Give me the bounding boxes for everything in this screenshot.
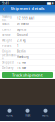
staticText: Hamburg (17, 55, 29, 59)
button[interactable]: Back (1, 5, 6, 12)
staticText: Service (2, 33, 11, 37)
staticText: Express (17, 28, 26, 31)
staticText: Tracking no. (2, 15, 12, 22)
staticText: 2.4 kg (17, 39, 26, 42)
staticText: 1Z 999 AA1 (17, 17, 35, 20)
staticText: Destination (2, 53, 17, 61)
staticText: Home (5, 114, 13, 117)
staticText: Origin (2, 50, 11, 53)
staticText: Carrier (2, 28, 11, 31)
staticText: In transit (17, 22, 29, 26)
staticText: Track (25, 114, 30, 117)
staticText: 12 Mar (17, 61, 26, 64)
staticText: Delivery (2, 66, 13, 70)
button[interactable]: More (36, 105, 54, 121)
staticText: ‹ (2, 4, 4, 13)
staticText: ▆▆ ▮ (47, 1, 53, 4)
staticText: Weight (2, 39, 12, 42)
staticText: Ground (17, 33, 28, 37)
staticText: Shipment details (10, 6, 44, 11)
button[interactable]: Track shipment (2, 72, 53, 78)
staticText: More (42, 114, 49, 117)
staticText: Berlin (17, 50, 26, 53)
button[interactable]: Track (18, 105, 36, 121)
staticText: Track shipment (12, 72, 43, 78)
staticText: Status (2, 22, 9, 26)
staticText: Pieces (2, 44, 11, 48)
staticText: 9:41 (2, 0, 9, 6)
staticText: 1 (17, 44, 19, 48)
staticText: Shipped (2, 61, 14, 64)
button[interactable]: Home (0, 105, 18, 121)
staticText: 16 Mar (17, 66, 26, 70)
